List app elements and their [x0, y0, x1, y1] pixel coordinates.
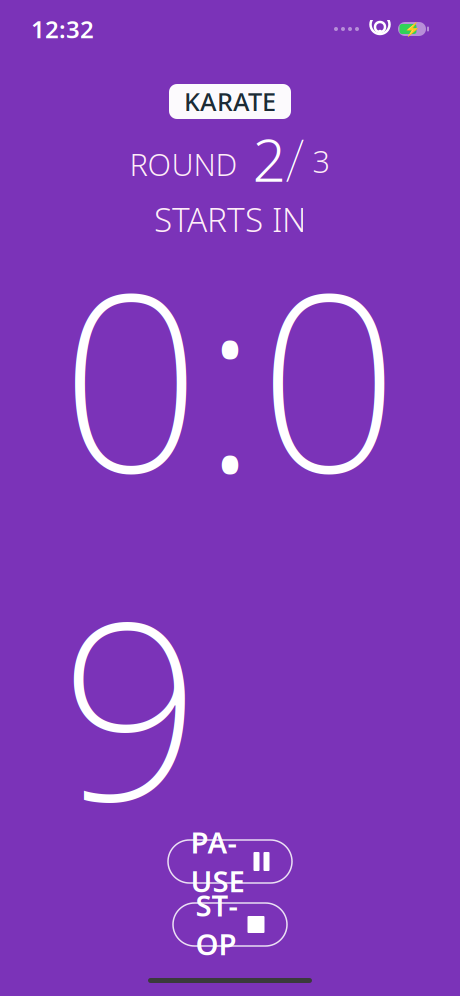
staticText: 12:32	[31, 13, 94, 45]
staticText: 3	[304, 141, 330, 181]
staticText: /	[285, 120, 304, 198]
staticText: STARTS IN	[154, 197, 306, 241]
staticText: STOP	[195, 885, 237, 963]
staticText: ROUND	[129, 144, 237, 184]
button[interactable]: STOP	[173, 903, 287, 946]
staticText: 0:09	[60, 213, 399, 868]
staticText: ⚡	[403, 21, 420, 37]
staticText: 2	[237, 120, 285, 198]
button[interactable]: PAUSE	[168, 840, 292, 883]
staticText: KARATE	[184, 85, 276, 118]
button[interactable]: KARATE	[169, 84, 291, 119]
staticText: PAUSE	[190, 822, 244, 900]
